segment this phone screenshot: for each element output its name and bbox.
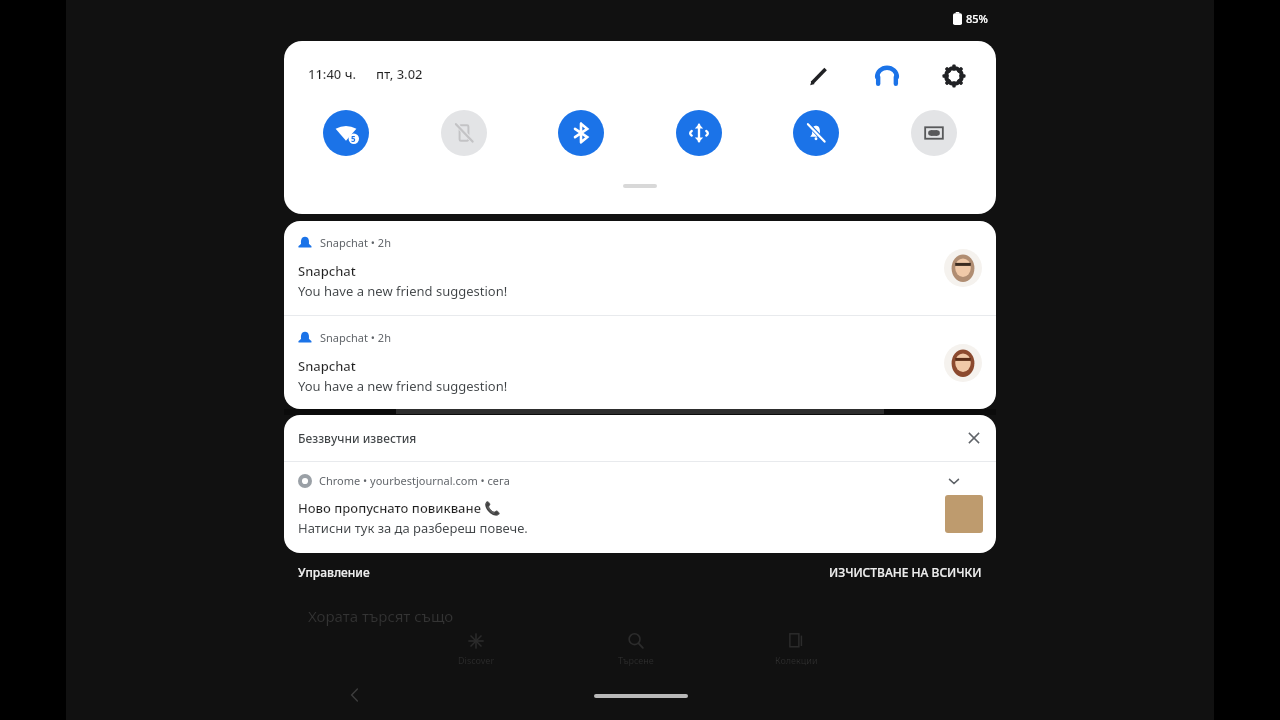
staticText: 85%	[966, 11, 988, 26]
button[interactable]: Snapchat • 2h	[284, 316, 996, 409]
staticText: Колекции	[775, 654, 818, 666]
staticText: Търсене	[618, 654, 654, 666]
button[interactable]: 11:40 ч.	[308, 65, 357, 83]
button[interactable]: Беззвучни известия	[284, 415, 996, 461]
staticText: Snapchat	[298, 262, 356, 280]
staticText: Snapchat • 2h	[320, 330, 391, 345]
staticText: Ново пропуснато повикване 📞	[298, 499, 501, 517]
button[interactable]: Chrome • yourbestjournal.com • сега	[284, 462, 996, 553]
button[interactable]: Auto-rotate off	[441, 110, 487, 156]
staticText: 5	[351, 133, 356, 144]
staticText: You have a new friend suggestion!	[298, 282, 508, 300]
staticText: Беззвучни известия	[298, 430, 417, 446]
staticText: Snapchat • 2h	[320, 235, 391, 250]
button[interactable]: Snapchat • 2h	[284, 221, 996, 315]
staticText: Snapchat	[298, 357, 356, 375]
button[interactable]: Управление	[298, 564, 370, 580]
button[interactable]: ИЗЧИСТВАНЕ НА ВСИЧКИ	[829, 564, 982, 580]
button[interactable]: Bluetooth	[558, 110, 604, 156]
button[interactable]: User	[874, 63, 900, 89]
button[interactable]: Do not disturb	[793, 110, 839, 156]
button[interactable]: Колекции	[746, 632, 846, 666]
staticText: Discover	[458, 654, 495, 666]
button[interactable]: пт, 3.02	[376, 65, 423, 83]
button[interactable]: Settings	[942, 64, 966, 88]
button[interactable]: Wi-Fi	[323, 110, 369, 156]
staticText: Натисни тук за да разбереш повече.	[298, 519, 528, 537]
button[interactable]: Auto-rotate	[676, 110, 722, 156]
button[interactable]: Back	[349, 689, 361, 701]
staticText: Chrome • yourbestjournal.com • сега	[319, 473, 510, 488]
staticText: Хората търсят също	[308, 606, 454, 626]
button[interactable]: Discover	[426, 632, 526, 666]
button[interactable]: Cast	[911, 110, 957, 156]
button[interactable]: Търсене	[586, 632, 686, 666]
button[interactable]: Dismiss	[966, 430, 982, 446]
staticText: You have a new friend suggestion!	[298, 377, 508, 395]
button[interactable]: Expand	[947, 474, 961, 488]
button[interactable]: Edit	[808, 65, 830, 87]
